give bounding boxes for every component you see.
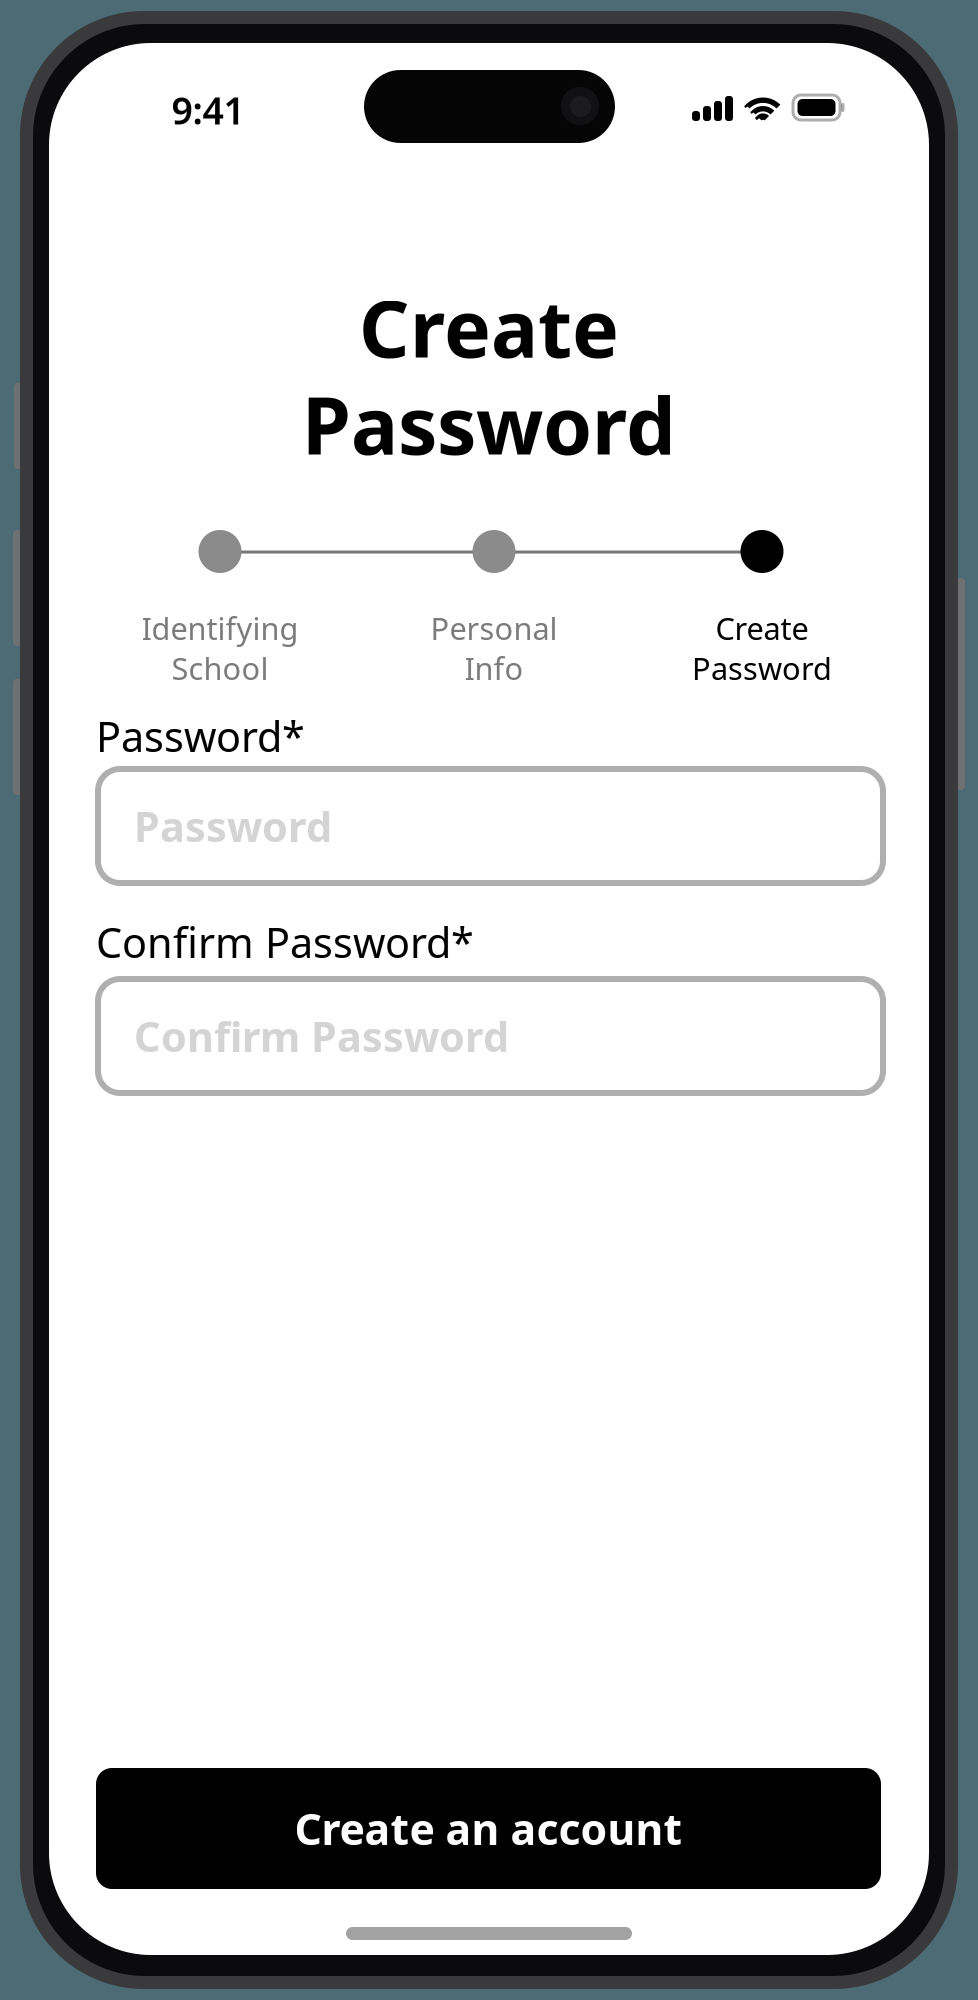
staticText: School (171, 648, 268, 688)
staticText: Create (715, 608, 808, 648)
staticText: Password (302, 372, 676, 476)
button[interactable]: Password (98, 769, 883, 883)
staticText: Info (464, 648, 523, 688)
staticText: Confirm Password (134, 1009, 509, 1063)
button[interactable]: Confirm Password (98, 979, 883, 1093)
button[interactable]: Create an account (96, 1768, 881, 1889)
staticText: Identifying (141, 608, 298, 648)
staticText: Confirm Password* (96, 915, 474, 969)
staticText: Create (359, 275, 619, 379)
staticText: 9:41 (171, 85, 244, 135)
staticText: Password* (96, 709, 305, 763)
staticText: Password (692, 648, 832, 688)
staticText: Create an account (294, 1800, 682, 1857)
staticText: Personal (430, 608, 557, 648)
staticText: Password (134, 799, 332, 853)
